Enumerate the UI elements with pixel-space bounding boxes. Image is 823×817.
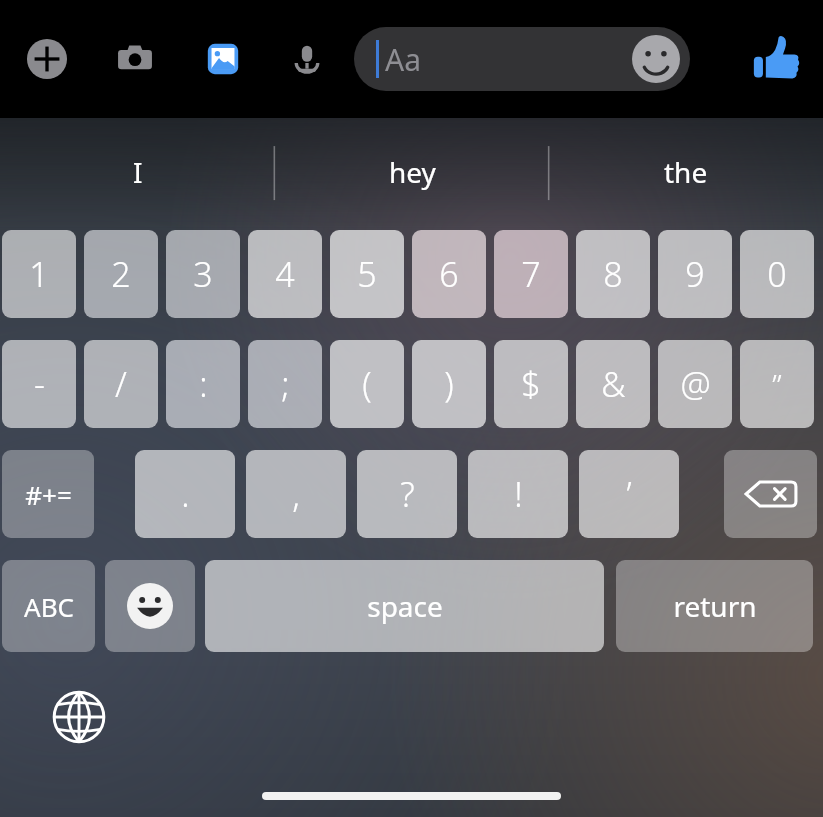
button[interactable]: 4 bbox=[248, 230, 322, 318]
staticText: @ bbox=[680, 361, 711, 407]
button[interactable]: . bbox=[135, 450, 235, 538]
button[interactable]: Aa bbox=[354, 27, 690, 91]
staticText: 9 bbox=[685, 251, 705, 297]
button[interactable]: 3 bbox=[166, 230, 240, 318]
staticText: , bbox=[292, 471, 300, 517]
button[interactable]: ” bbox=[740, 340, 814, 428]
button[interactable]: , bbox=[246, 450, 346, 538]
staticText: 0 bbox=[767, 251, 787, 297]
button[interactable]: ( bbox=[330, 340, 404, 428]
button[interactable]: Stickers and emoji bbox=[632, 35, 680, 83]
staticText: / bbox=[115, 361, 127, 407]
button[interactable]: - bbox=[2, 340, 76, 428]
button[interactable]: & bbox=[576, 340, 650, 428]
staticText: $ bbox=[521, 361, 541, 407]
staticText: 4 bbox=[275, 251, 295, 297]
button[interactable]: 7 bbox=[494, 230, 568, 318]
staticText: 2 bbox=[111, 251, 131, 297]
staticText: 3 bbox=[193, 251, 213, 297]
staticText: hey bbox=[389, 153, 436, 191]
staticText: ! bbox=[514, 471, 523, 517]
staticText: 6 bbox=[439, 251, 459, 297]
button[interactable]: 2 bbox=[84, 230, 158, 318]
staticText: ( bbox=[362, 361, 372, 407]
staticText: ? bbox=[400, 471, 415, 517]
button[interactable]: Open actions bbox=[22, 34, 72, 84]
staticText: ” bbox=[772, 364, 782, 405]
button[interactable]: Backspace bbox=[724, 450, 817, 538]
button[interactable]: Send a like bbox=[749, 31, 805, 87]
staticText: ) bbox=[444, 361, 454, 407]
staticText: ; bbox=[281, 361, 290, 407]
button[interactable]: $ bbox=[494, 340, 568, 428]
button[interactable]: space bbox=[205, 560, 604, 652]
staticText: #+= bbox=[25, 477, 72, 512]
staticText: I bbox=[133, 153, 143, 191]
button[interactable]: 1 bbox=[2, 230, 76, 318]
button[interactable]: Photos bbox=[198, 34, 248, 84]
staticText: . bbox=[181, 471, 190, 517]
button[interactable]: : bbox=[166, 340, 240, 428]
staticText: 8 bbox=[603, 251, 623, 297]
staticText: - bbox=[34, 361, 45, 407]
staticText: ABC bbox=[24, 589, 74, 624]
button[interactable]: Switch keyboard language bbox=[50, 688, 108, 746]
button[interactable]: Camera bbox=[110, 34, 160, 84]
button[interactable]: the bbox=[549, 118, 823, 226]
button[interactable]: ! bbox=[468, 450, 568, 538]
button[interactable]: ’ bbox=[579, 450, 679, 538]
button[interactable]: hey bbox=[275, 118, 549, 226]
staticText: space bbox=[367, 587, 443, 625]
button[interactable]: ABC bbox=[2, 560, 95, 652]
staticText: 1 bbox=[29, 251, 49, 297]
button[interactable]: return bbox=[616, 560, 813, 652]
staticText: return bbox=[673, 587, 757, 625]
button[interactable]: ) bbox=[412, 340, 486, 428]
staticText: ’ bbox=[626, 471, 632, 517]
button[interactable]: ; bbox=[248, 340, 322, 428]
button[interactable]: #+= bbox=[2, 450, 94, 538]
button[interactable]: Emoji bbox=[105, 560, 195, 652]
button[interactable]: 9 bbox=[658, 230, 732, 318]
button[interactable]: 0 bbox=[740, 230, 814, 318]
button[interactable]: Voice message bbox=[282, 34, 332, 84]
button[interactable]: @ bbox=[658, 340, 732, 428]
button[interactable]: 8 bbox=[576, 230, 650, 318]
button[interactable]: 6 bbox=[412, 230, 486, 318]
button[interactable]: / bbox=[84, 340, 158, 428]
staticText: & bbox=[601, 361, 626, 407]
button[interactable]: ? bbox=[357, 450, 457, 538]
staticText: Aa bbox=[385, 39, 421, 80]
staticText: the bbox=[664, 153, 708, 191]
staticText: 7 bbox=[521, 251, 541, 297]
button[interactable]: 5 bbox=[330, 230, 404, 318]
staticText: 5 bbox=[357, 251, 377, 297]
button[interactable]: I bbox=[0, 118, 275, 226]
staticText: : bbox=[199, 361, 208, 407]
